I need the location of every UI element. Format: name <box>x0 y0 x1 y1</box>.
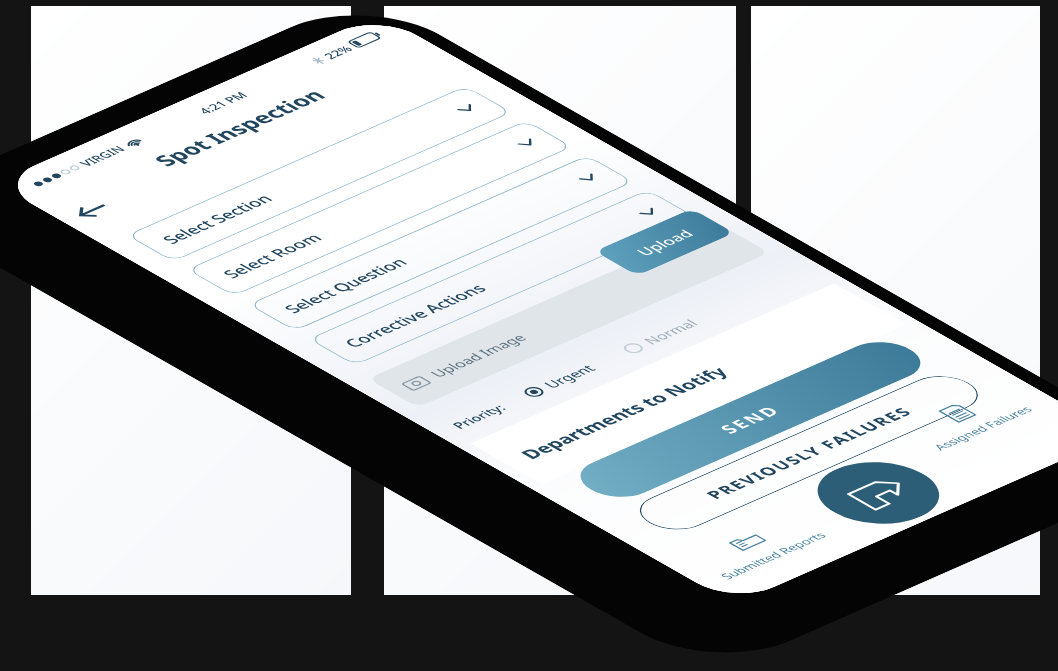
button[interactable]: Corrective Actions <box>308 189 694 365</box>
staticText: 22% <box>319 43 356 61</box>
staticText: Assigned Failures <box>929 403 1036 452</box>
button[interactable]: Upload Image <box>367 224 770 408</box>
button[interactable]: Urgent <box>518 362 600 400</box>
staticText: Upload Image <box>425 331 532 380</box>
staticText: Submitted Reports <box>716 529 830 582</box>
staticText: Priority: <box>447 401 510 431</box>
button[interactable]: Home <box>792 450 964 536</box>
staticText: Select Room <box>217 230 327 281</box>
button[interactable]: Select Room <box>187 120 573 296</box>
button[interactable]: Assigned Failures <box>879 378 1058 467</box>
button[interactable]: Departments to Notify <box>470 283 906 485</box>
staticText: SEND <box>714 402 787 437</box>
button[interactable]: Normal <box>617 316 703 356</box>
staticText: Upload <box>631 226 699 259</box>
button[interactable]: Submitted Reports <box>669 505 855 594</box>
staticText: 4:21 PM <box>194 89 252 116</box>
staticText: Select Section <box>156 191 278 247</box>
button[interactable]: Back <box>54 191 129 229</box>
button[interactable]: Select Question <box>248 155 634 331</box>
staticText: Spot Inspection <box>146 85 333 170</box>
staticText: Select Question <box>278 254 412 316</box>
button[interactable]: PREVIOUSLY FAILURES <box>625 369 993 537</box>
staticText: Departments to Notify <box>514 363 734 463</box>
button[interactable]: Select Section <box>126 86 512 262</box>
button[interactable]: SEND <box>565 334 936 505</box>
button[interactable]: Upload <box>594 208 735 276</box>
staticText: Corrective Actions <box>338 280 492 350</box>
staticText: Urgent <box>539 362 600 391</box>
staticText: VIRGIN <box>75 143 130 169</box>
staticText: PREVIOUSLY FAILURES <box>700 404 917 502</box>
staticText: Normal <box>638 316 703 347</box>
